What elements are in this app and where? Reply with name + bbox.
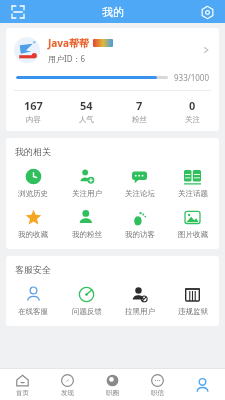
staticText: 关注话题 [178,189,208,198]
staticText: 违规监狱 [178,307,208,316]
staticText: 用户ID：6 [48,53,86,64]
button[interactable]: 发现 [45,371,90,400]
staticText: 内容 [26,115,41,124]
button[interactable]: Scan [8,2,28,22]
button[interactable]: 关注话题 [166,166,219,200]
button[interactable] [180,371,225,400]
staticText: 我的访客 [125,230,155,239]
button[interactable]: 在线客服 [6,284,60,318]
button[interactable]: 违规监狱 [166,284,219,318]
staticText: 浏览历史 [18,189,48,198]
staticText: 54 [80,98,93,113]
button[interactable]: 关注论坛 [113,166,166,200]
staticText: 职圈 [106,389,119,397]
button[interactable]: 我的粉丝 [60,207,113,241]
staticText: 发现 [61,389,74,397]
button[interactable]: 54 [60,98,113,124]
staticText: 我的相关 [15,146,51,157]
button[interactable]: Java帮帮 [6,28,219,72]
staticText: 粉丝 [132,115,147,124]
staticText: 关注用户 [72,189,102,198]
staticText: 客服安全 [15,264,51,275]
button[interactable]: 7 [113,98,166,124]
staticText: 首页 [16,389,29,397]
button[interactable]: 我的访客 [113,207,166,241]
staticText: 933/1000 [174,72,210,83]
button[interactable]: 浏览历史 [6,166,60,200]
staticText: 在线客服 [18,307,48,316]
button[interactable]: 职信 [135,371,180,400]
button[interactable]: Settings [197,2,217,22]
staticText: 我的收藏 [18,230,48,239]
button[interactable]: 拉黑用户 [113,284,166,318]
staticText: 拉黑用户 [125,307,155,316]
button[interactable]: 图片收藏 [166,207,219,241]
staticText: 0 [189,98,196,113]
staticText: 图片收藏 [178,230,208,239]
staticText: 问题反馈 [72,307,102,316]
button[interactable]: 问题反馈 [60,284,113,318]
staticText: 167 [24,98,43,113]
button[interactable]: 我的收藏 [6,207,60,241]
staticText: 关注 [185,115,200,124]
button[interactable]: 首页 [0,371,45,400]
staticText: 职信 [151,389,164,397]
button[interactable]: 职圈 [90,371,135,400]
staticText: 我的 [102,5,124,19]
button[interactable]: 0 [166,98,219,124]
staticText: 人气 [79,115,94,124]
button[interactable]: 关注用户 [60,166,113,200]
button[interactable]: 167 [6,98,60,124]
staticText: Java帮帮 [48,36,89,50]
staticText: 关注论坛 [125,189,155,198]
staticText: 我的粉丝 [72,230,102,239]
staticText: 7 [136,98,143,113]
